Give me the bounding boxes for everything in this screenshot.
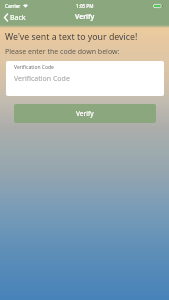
button[interactable]: Verification Code <box>6 61 164 96</box>
button[interactable]: Verify <box>14 104 156 123</box>
staticText: Carrier <box>5 3 21 9</box>
staticText: Verify <box>75 12 95 21</box>
staticText: Verification Code <box>14 74 70 84</box>
staticText: 1:05 PM <box>76 3 94 9</box>
staticText: Back <box>10 13 26 23</box>
other: Wi-Fi <box>23 4 28 8</box>
staticText: Please enter the code down below: <box>5 47 120 57</box>
other: Battery <box>153 4 163 8</box>
other: Back <box>4 14 8 21</box>
staticText: We've sent a text to your device! <box>5 31 138 43</box>
staticText: Verification Code <box>14 64 54 71</box>
staticText: Verify <box>76 109 94 118</box>
button[interactable]: Back <box>0 10 32 26</box>
